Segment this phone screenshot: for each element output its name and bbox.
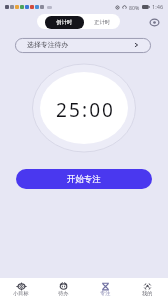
staticText: 选择专注待办 bbox=[27, 40, 69, 49]
staticText: 倒计时 bbox=[56, 19, 73, 26]
staticText: 专注 bbox=[100, 290, 111, 297]
staticText: 我的 bbox=[142, 290, 153, 297]
button[interactable]: 选择专注待办 bbox=[15, 38, 151, 53]
button[interactable]: 专注 bbox=[84, 278, 126, 300]
staticText: 25:00 bbox=[56, 97, 116, 119]
button[interactable]: 我的 bbox=[126, 278, 168, 300]
staticText: 80% bbox=[129, 4, 140, 11]
staticText: 正计时 bbox=[94, 19, 111, 26]
button[interactable]: 正计时 bbox=[84, 16, 120, 29]
button[interactable]: 开始专注 bbox=[16, 169, 152, 189]
staticText: 开始专注 bbox=[67, 174, 101, 185]
button[interactable]: Settings bbox=[149, 17, 160, 28]
button[interactable]: 小目标 bbox=[0, 278, 42, 300]
staticText: 1:46 bbox=[152, 3, 164, 11]
button[interactable]: 倒计时 bbox=[45, 16, 84, 29]
button[interactable]: 待办 bbox=[42, 278, 84, 300]
staticText: 待办 bbox=[58, 290, 69, 297]
staticText: 小目标 bbox=[13, 290, 29, 297]
